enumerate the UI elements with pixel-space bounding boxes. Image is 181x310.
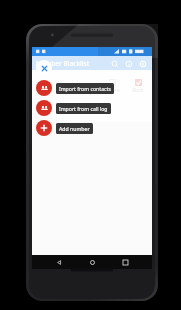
staticText: Silence <box>104 87 120 93</box>
button[interactable]: Add number <box>36 120 93 136</box>
staticText: Import from contacts <box>59 85 111 92</box>
button[interactable]: Import from call log <box>36 100 111 116</box>
button[interactable]: Recents <box>119 256 131 268</box>
button[interactable]: Back <box>53 256 65 268</box>
button[interactable]: Silence <box>103 78 121 94</box>
staticText: Number Blacklist <box>36 59 90 68</box>
staticText: Block <box>132 87 144 93</box>
button[interactable]: Block <box>131 78 145 94</box>
button[interactable]: Import from contacts <box>36 80 114 96</box>
staticText: Import from call log <box>59 105 108 112</box>
button[interactable]: Search <box>109 58 120 69</box>
button[interactable]: Close menu <box>36 60 52 76</box>
button[interactable]: Info <box>123 58 134 69</box>
button[interactable]: Home <box>86 256 98 268</box>
staticText: Add number <box>59 125 90 132</box>
button[interactable]: Settings <box>137 58 148 69</box>
